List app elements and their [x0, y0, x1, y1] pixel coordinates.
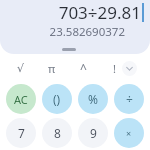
button[interactable]: % — [78, 84, 108, 114]
staticText: % — [88, 91, 98, 107]
button[interactable]: ! — [99, 58, 129, 78]
button[interactable]: AC — [6, 84, 36, 114]
button[interactable]: More functions — [122, 61, 137, 76]
staticText: 9 — [90, 125, 97, 141]
staticText: ! — [113, 61, 116, 76]
button[interactable]: () — [42, 84, 72, 114]
staticText: ^ — [80, 60, 87, 76]
button[interactable]: 8 — [42, 118, 72, 148]
button[interactable]: ÷ — [114, 84, 144, 114]
button[interactable]: π — [37, 58, 67, 78]
staticText: × — [126, 127, 132, 139]
button[interactable]: ^ — [68, 58, 98, 78]
staticText: π — [48, 61, 56, 76]
button[interactable]: × — [114, 118, 144, 148]
staticText: () — [53, 91, 61, 107]
staticText: 703÷29.81 — [58, 1, 141, 24]
staticText: √ — [17, 62, 25, 75]
button[interactable]: 703÷29.81 — [0, 0, 150, 54]
staticText: 23.582690372 — [49, 24, 125, 40]
button[interactable]: 7 — [6, 118, 36, 148]
staticText: 8 — [54, 125, 61, 141]
button[interactable]: √ — [6, 58, 36, 78]
staticText: ÷ — [126, 91, 133, 107]
button[interactable]: 9 — [78, 118, 108, 148]
staticText: AC — [14, 92, 28, 107]
staticText: 7 — [18, 125, 25, 141]
